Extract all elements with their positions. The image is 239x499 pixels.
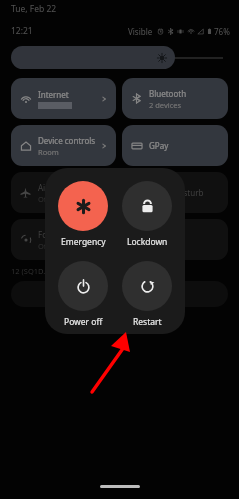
button[interactable]: Focus mode (11, 219, 116, 260)
staticText: Focus mode (38, 229, 84, 240)
button[interactable]: Brightness (11, 46, 175, 69)
staticText: Do not disturb (149, 187, 204, 198)
button[interactable] (122, 219, 228, 260)
staticText: 2 devices (149, 100, 182, 110)
staticText: Power off (64, 316, 103, 328)
staticText: Airplane mode (38, 182, 94, 193)
staticText: Device controls (38, 135, 96, 146)
button[interactable]: Restart (120, 260, 174, 329)
staticText: 76% (214, 26, 230, 37)
button[interactable]: Do not disturb (122, 172, 228, 213)
staticText: Tue, Feb 22 (11, 3, 57, 15)
staticText: Visible (128, 26, 153, 37)
button[interactable]: Device controls (11, 125, 116, 166)
staticText: Bluetooth (149, 88, 187, 99)
staticText: GPay (149, 140, 169, 151)
staticText: Off (38, 241, 50, 251)
staticText: Emergency (61, 236, 106, 248)
staticText: Lockdown (127, 236, 168, 248)
staticText: Off (38, 194, 50, 204)
button[interactable]: Power off (56, 260, 110, 329)
button[interactable]: Bluetooth (122, 78, 228, 119)
staticText: Internet (38, 89, 69, 100)
staticText: Restart (133, 316, 162, 328)
button[interactable]: Airplane mode (11, 172, 116, 213)
button[interactable]: Internet (11, 78, 116, 119)
button[interactable]: Emergency (56, 180, 110, 249)
button[interactable] (11, 281, 228, 307)
button[interactable]: Lockdown (120, 180, 174, 249)
staticText: 12:21 (11, 25, 33, 37)
staticText: Room (38, 147, 59, 157)
button[interactable]: GPay (122, 125, 228, 166)
staticText: 12 (SQ1D.220205.004) (11, 266, 89, 276)
